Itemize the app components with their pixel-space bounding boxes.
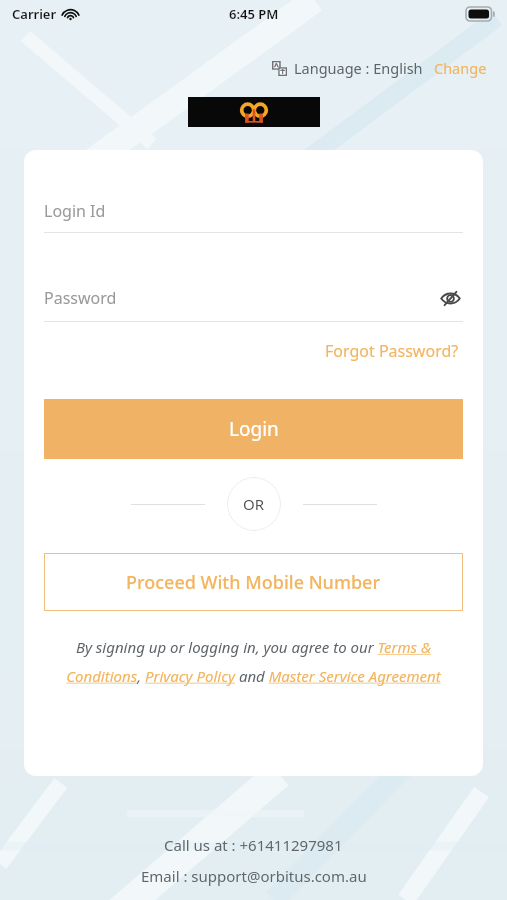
staticText: 6:45 PM [229,5,279,23]
button[interactable]: Login [44,399,463,459]
staticText: Login [229,416,279,442]
button[interactable]: Proceed With Mobile Number [44,553,463,611]
button[interactable]: By signing up or logging in, you agree t… [50,637,457,686]
button[interactable]: Login Id [44,200,463,233]
staticText: OR [243,494,265,514]
staticText: Proceed With Mobile Number [126,570,381,595]
button[interactable]: Show password [437,285,463,311]
staticText: By signing up or logging in, you agree t… [50,637,457,686]
button[interactable]: Translate [272,56,487,80]
staticText: Language : English [294,58,423,78]
staticText: Forgot Password? [325,340,459,362]
other: Translate [272,61,287,76]
staticText: Carrier [12,5,57,23]
staticText: Change [434,58,487,78]
staticText: Password [44,287,437,309]
staticText: Email : support@orbitus.com.au [141,866,367,886]
button[interactable]: Forgot Password? [321,336,463,366]
button[interactable]: Password [44,285,463,322]
staticText: Call us at : +61411297981 [164,835,343,855]
staticText: Login Id [44,200,106,222]
